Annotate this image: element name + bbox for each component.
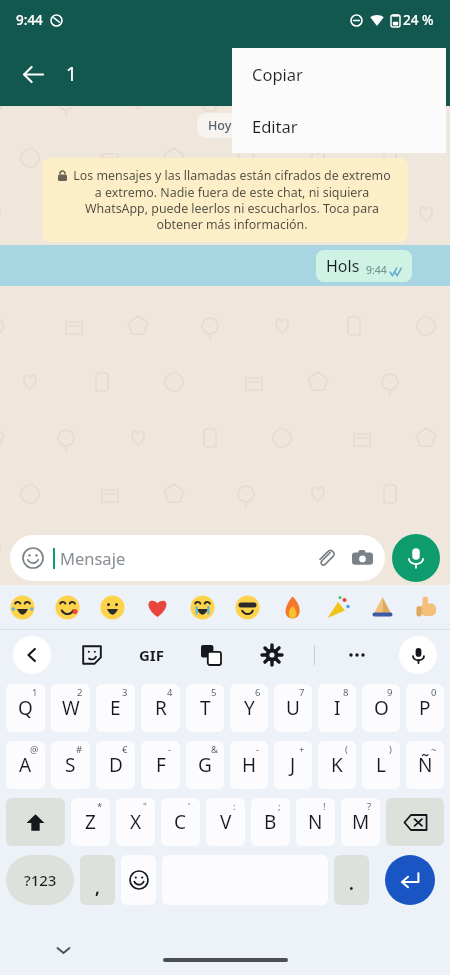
staticText: W (62, 695, 80, 721)
button[interactable]: Ñ (406, 741, 444, 789)
staticText: 9 (387, 686, 393, 699)
staticText: L (376, 752, 386, 778)
button[interactable]: Z (71, 798, 110, 846)
button[interactable]: Settings (253, 636, 291, 674)
button[interactable]: ?123 (6, 855, 74, 905)
staticText: Los mensajes y las llamadas están cifrad… (72, 167, 392, 233)
button[interactable]: Emoji (225, 585, 270, 629)
button[interactable]: P (406, 684, 444, 732)
button[interactable]: U (274, 684, 312, 732)
button[interactable]: Emoji (135, 585, 180, 629)
button[interactable]: E (96, 684, 135, 732)
staticText: N (308, 809, 323, 835)
button[interactable]: G (186, 741, 224, 789)
button[interactable]: X (116, 798, 155, 846)
button[interactable]: Back (13, 636, 51, 674)
button[interactable]: Editar (232, 100, 446, 152)
button[interactable]: Shift (6, 798, 65, 846)
button[interactable]: L (362, 741, 400, 789)
staticText: ) (389, 743, 392, 756)
button[interactable]: T (186, 684, 224, 732)
button[interactable]: Copiar (232, 48, 446, 100)
button[interactable]: Emoji (180, 585, 225, 629)
button[interactable]: Backspace (386, 798, 444, 846)
button[interactable]: Emoji (0, 585, 45, 629)
staticText: & (211, 743, 218, 756)
staticText: 4 (167, 686, 173, 699)
button[interactable]: Emoji (315, 585, 360, 629)
button[interactable]: M (341, 798, 380, 846)
staticText: @ (30, 743, 39, 756)
button[interactable]: Emoji (405, 585, 450, 629)
staticText: . (349, 872, 354, 895)
staticText: Hols (326, 255, 360, 277)
staticText: + (299, 743, 305, 756)
staticText: T (200, 695, 211, 721)
button[interactable]: GIF (133, 635, 170, 675)
button[interactable]: W (51, 684, 90, 732)
button[interactable]: K (318, 741, 356, 789)
staticText: 3 (122, 686, 128, 699)
button[interactable]: Sticker (73, 636, 111, 674)
staticText: 2 (77, 686, 83, 699)
staticText: Hoy (208, 117, 232, 134)
staticText: V (220, 809, 232, 835)
staticText: : (233, 800, 236, 813)
button[interactable]: H (230, 741, 268, 789)
button[interactable]: N (296, 798, 335, 846)
button[interactable]: O (362, 684, 400, 732)
button[interactable]: B (251, 798, 290, 846)
button[interactable]: . (334, 855, 369, 905)
staticText: 1 (32, 686, 38, 699)
button[interactable]: Reply (294, 57, 328, 91)
button[interactable]: F (141, 741, 180, 789)
staticText: ? (367, 800, 372, 813)
staticText: P (419, 695, 431, 721)
staticText: C (174, 809, 187, 835)
button[interactable]: Mensaje (10, 535, 385, 581)
button[interactable]: Los mensajes y las llamadas están cifrad… (42, 158, 408, 242)
button[interactable]: Emoji (360, 585, 405, 629)
button[interactable]: Emoji (121, 855, 156, 905)
staticText: - (256, 743, 260, 756)
button[interactable]: Y (230, 684, 268, 732)
button[interactable]: V (206, 798, 245, 846)
button[interactable]: Enter (385, 855, 435, 905)
staticText: 9:44 (366, 263, 387, 277)
button[interactable]: A (6, 741, 45, 789)
staticText: E (110, 695, 121, 721)
staticText: G (198, 752, 212, 778)
staticText: 24 % (403, 11, 434, 29)
staticText: * (97, 800, 103, 813)
staticText: F (156, 752, 166, 778)
button[interactable]: S (51, 741, 90, 789)
staticText: A (19, 752, 32, 778)
staticText: ' (188, 800, 191, 813)
staticText: 0 (431, 686, 437, 699)
button[interactable]: Translate (192, 636, 230, 674)
button[interactable]: Hols (316, 250, 412, 282)
button[interactable]: More (338, 636, 376, 674)
button[interactable]: Hide keyboard (46, 933, 80, 967)
button[interactable]: D (96, 741, 135, 789)
button[interactable]: R (141, 684, 180, 732)
button[interactable]: Voice input (399, 636, 437, 674)
button[interactable]: Emoji (45, 585, 90, 629)
button[interactable]: Back (16, 57, 50, 91)
staticText: 8 (343, 686, 349, 699)
staticText: O (374, 695, 389, 721)
button[interactable]: C (161, 798, 200, 846)
button[interactable]: I (318, 684, 356, 732)
button[interactable]: , (80, 855, 115, 905)
button[interactable]: Voice message (392, 534, 440, 582)
button[interactable]: Emoji (270, 585, 315, 629)
staticText: - (168, 743, 172, 756)
staticText: Ñ (418, 752, 433, 778)
staticText: " (143, 800, 147, 813)
button[interactable]: J (274, 741, 312, 789)
button[interactable]: Emoji (90, 585, 135, 629)
staticText: D (109, 752, 123, 778)
button[interactable]: Q (6, 684, 45, 732)
